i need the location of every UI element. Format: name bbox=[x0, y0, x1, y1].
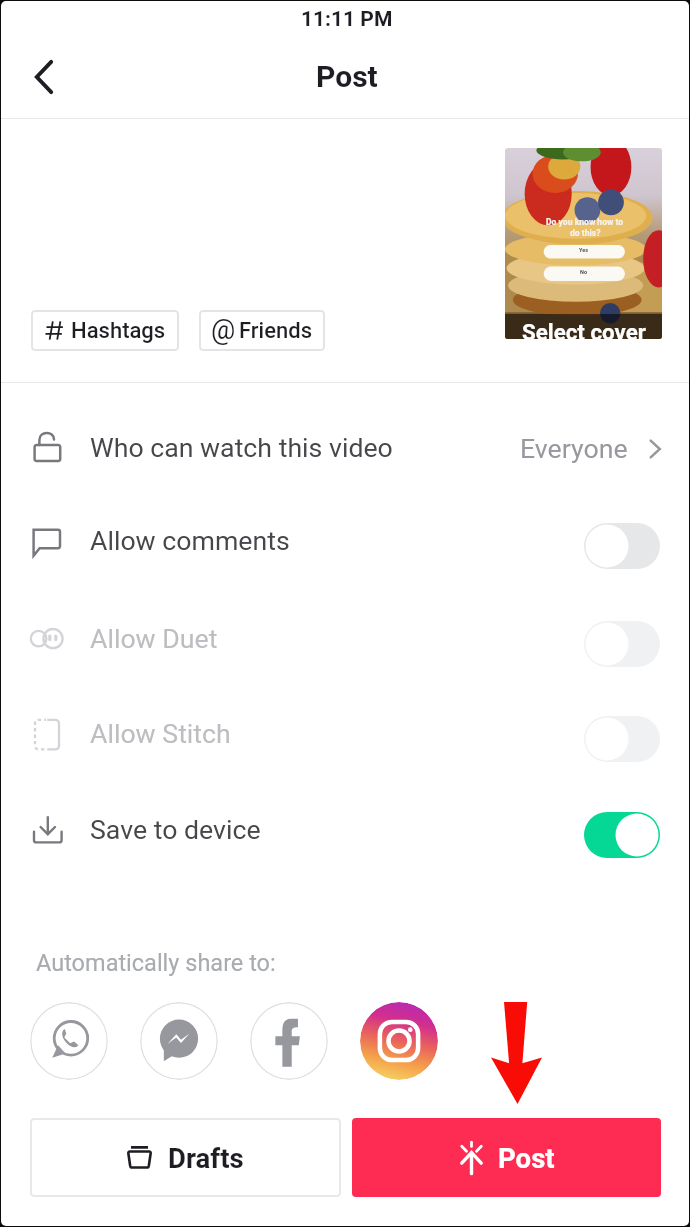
staticText: Hashtags bbox=[71, 318, 166, 344]
staticText: Friends bbox=[239, 318, 313, 344]
staticText: Select cover bbox=[522, 319, 646, 339]
staticText: Yes bbox=[579, 247, 589, 253]
staticText: Who can watch this video bbox=[90, 432, 393, 463]
staticText: Allow Duet bbox=[90, 623, 218, 654]
staticText: Allow comments bbox=[90, 525, 290, 556]
button[interactable]: Off bbox=[584, 716, 660, 762]
button[interactable]: Allow Duet bbox=[1, 591, 689, 686]
button[interactable]: Allow Stitch bbox=[1, 686, 689, 781]
staticText: Allow Stitch bbox=[90, 718, 231, 749]
staticText: Do you know how to bbox=[546, 217, 624, 227]
button[interactable]: Share to Instagram bbox=[360, 1002, 438, 1080]
staticText: No bbox=[580, 269, 587, 275]
button[interactable]: Back bbox=[12, 45, 76, 109]
button[interactable]: Who can watch this video bbox=[1, 400, 689, 495]
staticText: Drafts bbox=[168, 1142, 244, 1174]
button[interactable]: Drafts bbox=[30, 1118, 341, 1197]
staticText: 11:11 PM bbox=[301, 7, 393, 32]
staticText: Post bbox=[498, 1142, 555, 1174]
staticText: Automatically share to: bbox=[36, 949, 276, 977]
staticText: Save to device bbox=[90, 814, 261, 845]
staticText: Everyone bbox=[520, 433, 628, 464]
button[interactable]: Share to WhatsApp bbox=[30, 1002, 108, 1080]
button[interactable]: @ bbox=[199, 310, 325, 351]
button[interactable]: Hashtags bbox=[31, 310, 179, 351]
staticText: @ bbox=[211, 314, 236, 346]
staticText: do this? bbox=[570, 228, 601, 238]
button[interactable]: Allow comments bbox=[1, 493, 689, 588]
button[interactable]: Save to device bbox=[1, 782, 689, 877]
button[interactable]: Share to Facebook bbox=[250, 1002, 328, 1080]
staticText: Post bbox=[316, 59, 378, 94]
button[interactable]: Share to Messenger bbox=[140, 1002, 218, 1080]
button[interactable]: On bbox=[584, 812, 660, 858]
button[interactable]: Off bbox=[584, 523, 660, 569]
button[interactable]: Off bbox=[584, 621, 660, 667]
button[interactable]: Select cover bbox=[505, 148, 662, 339]
button[interactable]: Post bbox=[352, 1118, 661, 1197]
